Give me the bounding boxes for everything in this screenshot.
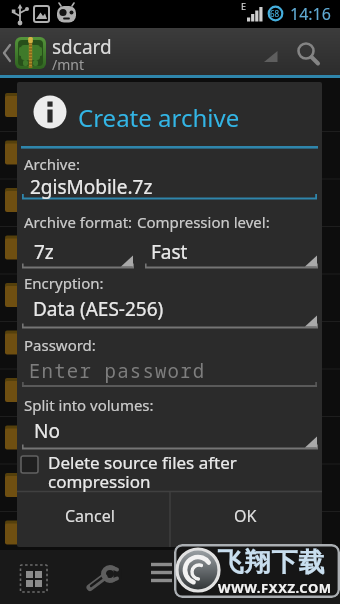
staticText: Split into volumes:	[24, 395, 154, 415]
staticText: 68	[270, 8, 280, 19]
staticText: Encryption:	[24, 273, 104, 293]
staticText: 7z	[34, 239, 54, 265]
staticText: No	[34, 418, 60, 444]
button[interactable]	[0, 33, 14, 73]
button[interactable]	[144, 558, 186, 600]
staticText: E	[241, 0, 247, 12]
button[interactable]: OK	[171, 493, 322, 547]
button[interactable]	[17, 409, 322, 451]
button[interactable]	[142, 228, 322, 270]
staticText: OK	[234, 505, 257, 527]
staticText: WWW.FXXZ.COM	[218, 579, 332, 597]
button[interactable]	[17, 452, 322, 490]
staticText: Archive:	[24, 154, 80, 174]
staticText: Data (AES-256)	[33, 296, 164, 322]
button[interactable]	[286, 33, 330, 73]
staticText: Enter password	[29, 358, 206, 384]
staticText: compression	[48, 470, 151, 493]
staticText: sdcard	[52, 34, 112, 60]
staticText: 飞翔下载	[217, 546, 325, 579]
staticText: Compression level:	[137, 212, 270, 232]
staticText: Fast	[151, 239, 188, 265]
button[interactable]	[17, 288, 322, 330]
button[interactable]	[17, 167, 322, 203]
button[interactable]	[17, 228, 134, 270]
staticText: Create archive	[78, 101, 240, 134]
staticText: Delete source files after	[48, 451, 237, 474]
button[interactable]	[84, 558, 126, 600]
button[interactable]: Cancel	[17, 493, 169, 547]
staticText: Password:	[24, 335, 96, 355]
staticText: /mnt	[52, 55, 85, 74]
button[interactable]	[14, 558, 56, 600]
staticText: Cancel	[65, 505, 115, 527]
staticText: 14:16	[290, 3, 331, 25]
button[interactable]	[17, 348, 322, 388]
staticText: 2gisMobile.7z	[30, 174, 153, 200]
staticText: Archive format:	[24, 212, 133, 232]
